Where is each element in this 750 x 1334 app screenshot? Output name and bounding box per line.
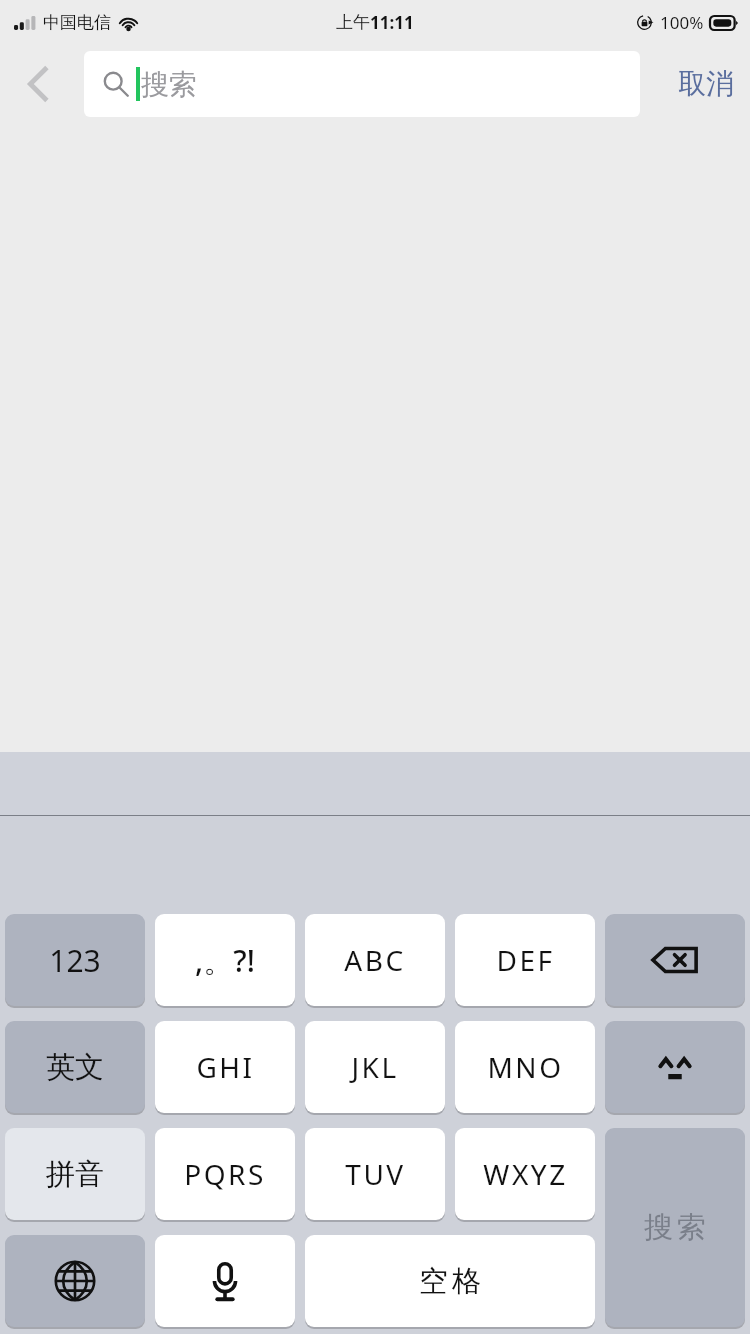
button[interactable]: Switch keyboard [5,1235,145,1327]
button[interactable]: GHI [155,1021,295,1113]
staticText: 搜索 [141,67,197,102]
staticText: JKL [351,1048,399,1086]
button[interactable]: 搜索 [605,1128,745,1327]
staticText: 上午 [336,12,370,33]
staticText: 拼音 [46,1156,104,1193]
button[interactable]: 取消 [662,44,750,123]
staticText: DEF [496,941,555,979]
staticText: TUV [345,1155,406,1193]
button[interactable]: 空格 [305,1235,595,1327]
staticText: 空格 [417,1263,483,1300]
button[interactable]: Back [0,44,76,123]
staticText: 搜索 [642,1209,708,1246]
button[interactable]: JKL [305,1021,445,1113]
button[interactable]: 搜索 [84,51,640,117]
button[interactable]: ,。?! [155,914,295,1006]
staticText: 123 [49,940,101,981]
button[interactable]: TUV [305,1128,445,1220]
staticText: PQRS [184,1155,266,1193]
staticText: ABC [344,941,406,979]
staticText: ,。?! [195,940,255,981]
button[interactable]: WXYZ [455,1128,595,1220]
staticText: WXYZ [483,1155,568,1193]
button[interactable]: DEF [455,914,595,1006]
staticText: 中国电信 [43,12,111,33]
button[interactable]: Voice input [155,1235,295,1327]
button[interactable]: Emoticon [605,1021,745,1113]
button[interactable]: 123 [5,914,145,1006]
button[interactable]: ABC [305,914,445,1006]
button[interactable]: PQRS [155,1128,295,1220]
button[interactable]: 英文 [5,1021,145,1113]
button[interactable]: MNO [455,1021,595,1113]
staticText: 11:11 [370,11,414,34]
staticText: 100% [660,11,704,34]
staticText: 英文 [46,1049,104,1086]
staticText: MNO [487,1048,564,1086]
staticText: 取消 [678,66,734,101]
button[interactable]: 拼音 [5,1128,145,1220]
staticText: GHI [196,1048,255,1086]
button[interactable]: Delete [605,914,745,1006]
